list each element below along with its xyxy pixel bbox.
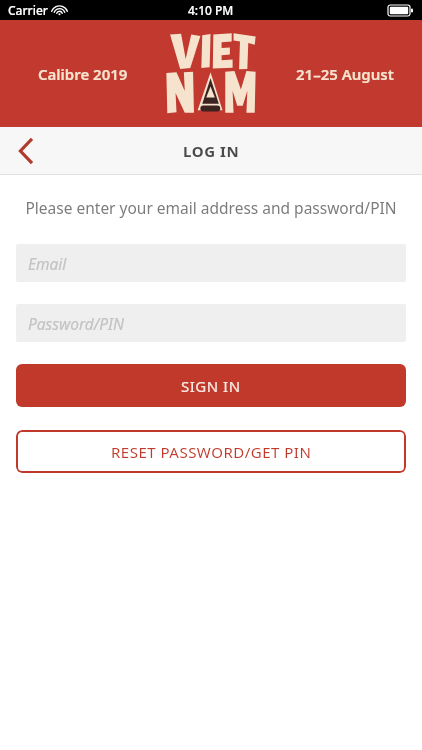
button[interactable]: Back xyxy=(0,127,52,175)
staticText: 21–25 August xyxy=(296,64,394,84)
staticText: Carrier xyxy=(8,2,48,18)
staticText: RESET PASSWORD/GET PIN xyxy=(111,442,312,462)
button[interactable]: Password/PIN xyxy=(16,304,406,342)
staticText: SIGN IN xyxy=(181,376,241,396)
button[interactable]: SIGN IN xyxy=(16,364,406,407)
button[interactable]: RESET PASSWORD/GET PIN xyxy=(16,430,406,473)
staticText: Password/PIN xyxy=(28,313,125,334)
staticText: LOG IN xyxy=(183,141,240,161)
staticText: Email xyxy=(28,253,67,274)
staticText: Calibre 2019 xyxy=(38,64,128,84)
staticText: 4:10 PM xyxy=(188,2,234,18)
button[interactable]: Email xyxy=(16,244,406,282)
staticText: Please enter your email address and pass… xyxy=(14,197,408,218)
